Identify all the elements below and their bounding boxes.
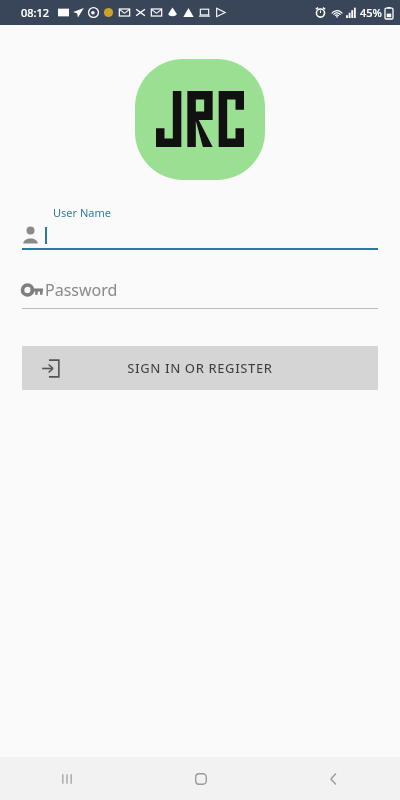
button[interactable]: Password <box>22 279 378 309</box>
button[interactable]: Back <box>267 757 400 800</box>
staticText: 45% <box>360 5 382 20</box>
button[interactable]: User Name <box>22 205 378 250</box>
staticText: Password <box>45 279 118 301</box>
button[interactable]: Home <box>134 757 267 800</box>
staticText: SIGN IN OR REGISTER <box>127 359 273 377</box>
staticText: User Name <box>53 205 111 220</box>
staticText: 08:12 <box>21 5 50 20</box>
button[interactable]: SIGN IN OR REGISTER <box>22 346 378 390</box>
button[interactable]: Recents <box>0 757 134 800</box>
